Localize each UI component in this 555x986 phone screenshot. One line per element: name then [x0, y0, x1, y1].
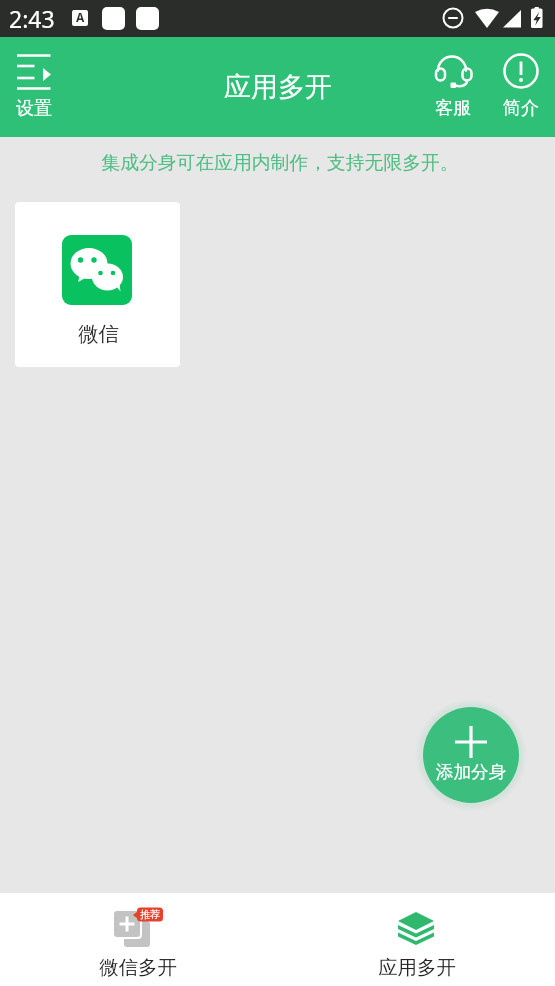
- staticText: 设置: [16, 97, 52, 120]
- staticText: 应用多开: [378, 955, 456, 980]
- staticText: 微信多开: [99, 955, 177, 980]
- staticText: 应用多开: [224, 70, 332, 104]
- staticText: 集成分身可在应用内制作，支持无限多开。: [101, 151, 459, 175]
- button[interactable]: 简介: [491, 49, 551, 125]
- staticText: 微信: [78, 321, 119, 347]
- button[interactable]: 添加分身: [423, 707, 519, 803]
- button[interactable]: 客服: [423, 49, 483, 125]
- button[interactable]: 推荐: [0, 893, 277, 986]
- button[interactable]: 设置: [4, 49, 64, 125]
- staticText: A: [76, 10, 85, 25]
- staticText: 2:43: [9, 3, 55, 34]
- button[interactable]: 应用多开: [277, 893, 555, 986]
- staticText: 简介: [503, 97, 539, 120]
- staticText: 客服: [435, 97, 471, 120]
- staticText: 添加分身: [436, 761, 506, 783]
- staticText: 推荐: [140, 908, 160, 921]
- button[interactable]: 微信: [15, 202, 180, 367]
